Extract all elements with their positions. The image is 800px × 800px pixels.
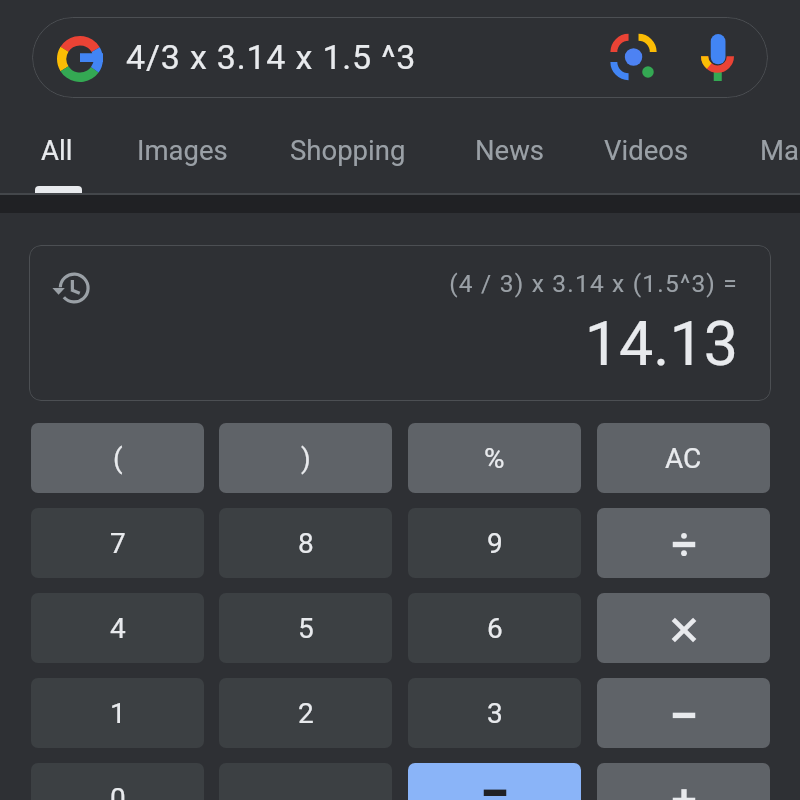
button[interactable]: News [459,124,561,176]
button[interactable]: 6 [408,593,581,663]
button[interactable]: 3 [408,678,581,748]
button[interactable]: 0 [31,763,204,800]
button[interactable]: 4/3 x 3.14 x 1.5 ^3 [32,17,768,98]
staticText: 4 [110,612,126,645]
staticText: 4/3 x 3.14 x 1.5 ^3 [126,37,417,77]
staticText: ( [113,442,123,475]
button[interactable]: ) [219,423,392,493]
staticText: Videos [604,134,689,166]
staticText: 5 [298,612,314,645]
staticText: 2 [298,697,314,730]
staticText: 6 [487,612,503,645]
button[interactable]: 7 [31,508,204,578]
staticText: News [475,134,545,166]
button[interactable]: AC [597,423,770,493]
button[interactable]: 1 [31,678,204,748]
button[interactable]: Search by image with Google Lens [599,23,669,93]
button[interactable]: All [25,124,89,176]
staticText: AC [665,442,702,475]
staticText: Maps [760,134,800,166]
staticText: ) [301,442,311,475]
button[interactable]: Maps [744,124,800,176]
button[interactable]: Images [121,124,244,176]
button[interactable]: % [408,423,581,493]
button[interactable]: Videos [588,124,705,176]
button[interactable]: plus [597,763,770,800]
staticText: Shopping [290,134,406,166]
staticText: (4 / 3) x 3.14 x (1.5^3) = [29,269,738,298]
staticText: 1 [110,697,126,730]
button[interactable]: divide [597,508,770,578]
button[interactable]: Shopping [274,124,422,176]
button[interactable]: equals [408,763,581,800]
staticText: All [41,134,73,166]
button[interactable]: 4 [31,593,204,663]
staticText: Images [137,134,228,166]
staticText: % [484,442,505,475]
button[interactable]: ( [31,423,204,493]
button[interactable]: 9 [408,508,581,578]
staticText: 14.13 [29,308,738,379]
staticText: 3 [487,697,503,730]
staticText: 0 [110,782,126,800]
button[interactable]: multiply [597,593,770,663]
staticText: 8 [298,527,314,560]
button[interactable]: 5 [219,593,392,663]
button[interactable]: minus [597,678,770,748]
button[interactable]: 2 [219,678,392,748]
button[interactable]: Search by voice [685,23,753,91]
button[interactable]: Calculation history [40,258,105,323]
staticText: 7 [110,527,126,560]
button[interactable]: 8 [219,508,392,578]
staticText: 9 [487,527,503,560]
